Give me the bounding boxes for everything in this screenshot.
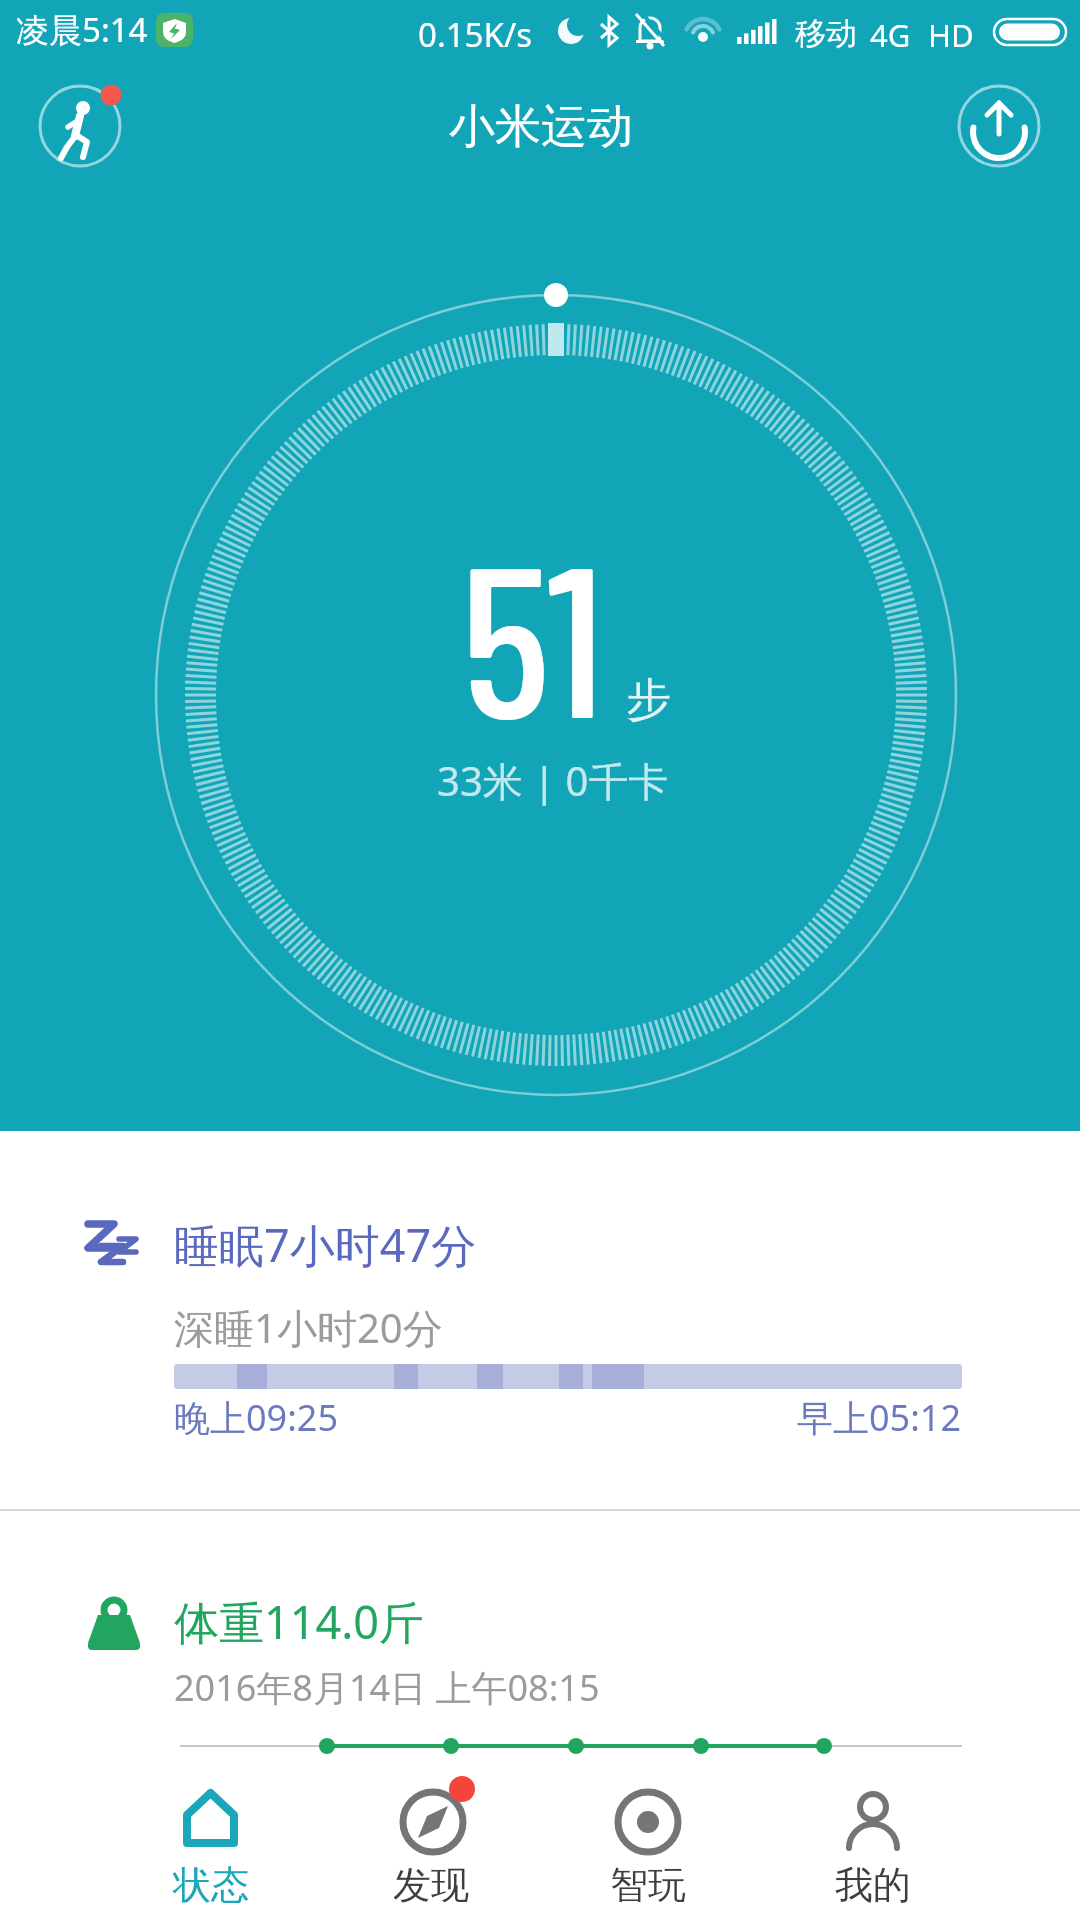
staticText: 发现 xyxy=(393,1861,469,1909)
staticText: 晚上09:25 xyxy=(174,1393,339,1442)
button[interactable]: 我的 xyxy=(763,1786,983,1920)
staticText: 0.15K/s xyxy=(418,12,532,57)
staticText: 33米 | 0千卡 xyxy=(437,753,669,808)
button[interactable]: 睡眠7小时47分 xyxy=(0,1131,1080,1510)
staticText: 体重114.0斤 xyxy=(174,1591,425,1652)
staticText: 移动 xyxy=(795,14,857,53)
staticText: 2016年8月14日 上午08:15 xyxy=(174,1663,600,1712)
staticText: 4G xyxy=(870,14,911,56)
staticText: 51 xyxy=(461,505,604,761)
staticText: 小米运动 xyxy=(449,98,633,156)
button[interactable] xyxy=(955,82,1043,170)
staticText: 凌晨5:14 xyxy=(16,7,148,52)
staticText: 早上05:12 xyxy=(797,1393,962,1442)
staticText: 智玩 xyxy=(610,1861,686,1909)
staticText: 深睡1小时20分 xyxy=(174,1300,443,1355)
staticText: 状态 xyxy=(173,1861,249,1909)
staticText: 步 xyxy=(626,672,671,729)
staticText: 我的 xyxy=(835,1861,911,1909)
button[interactable]: 体重114.0斤 xyxy=(0,1511,1080,1786)
button[interactable]: 状态 xyxy=(101,1786,321,1920)
button[interactable] xyxy=(36,82,124,170)
button[interactable]: 智玩 xyxy=(538,1786,758,1920)
staticText: HD xyxy=(928,14,974,56)
button[interactable]: 发现 xyxy=(321,1786,541,1920)
staticText: 睡眠7小时47分 xyxy=(174,1214,477,1275)
